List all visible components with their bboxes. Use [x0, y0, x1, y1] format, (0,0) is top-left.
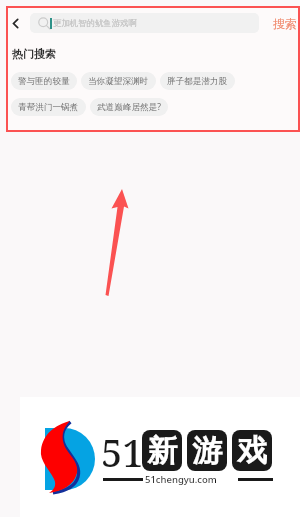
- staticText: 胖子都是潜力股: [167, 76, 228, 87]
- staticText: 青帮洪门一锅煮: [18, 102, 79, 113]
- button[interactable]: 当你凝望深渊时: [81, 72, 156, 90]
- staticText: 当你凝望深渊时: [88, 76, 149, 87]
- staticText: 戏: [237, 432, 267, 470]
- staticText: 武道巅峰居然是?: [97, 101, 161, 113]
- button[interactable]: Back: [4, 12, 26, 34]
- staticText: 新: [147, 432, 177, 470]
- staticText: 更加机智的鱿鱼游戏啊: [53, 18, 137, 29]
- staticText: 搜索: [273, 16, 297, 31]
- button[interactable]: 警与匪的较量: [11, 72, 77, 90]
- button[interactable]: 胖子都是潜力股: [160, 72, 235, 90]
- staticText: 热门搜索: [12, 47, 56, 61]
- button[interactable]: 更加机智的鱿鱼游戏啊: [30, 13, 259, 33]
- staticText: 警与匪的较量: [18, 76, 70, 87]
- button[interactable]: 武道巅峰居然是?: [90, 98, 168, 116]
- button[interactable]: 搜索: [270, 14, 300, 33]
- staticText: 游: [192, 432, 222, 470]
- staticText: 51chengyu.com: [145, 473, 217, 486]
- staticText: 51: [101, 426, 144, 478]
- button[interactable]: 青帮洪门一锅煮: [11, 98, 86, 116]
